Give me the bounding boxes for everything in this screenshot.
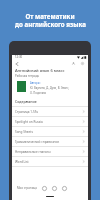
button[interactable]: Action: [61, 185, 68, 192]
staticText: Spotlight on Russia: [15, 120, 43, 124]
staticText: Word List: [15, 160, 29, 164]
button[interactable]: More options: [78, 59, 87, 68]
staticText: О. Подоляко: [30, 91, 47, 95]
staticText: Грамматический справочник: [15, 140, 60, 144]
staticText: Рабочая тетрадь: [15, 74, 40, 78]
button[interactable]: Bookmark: [69, 59, 78, 68]
button[interactable]: Back: [12, 59, 21, 68]
staticText: От математики: [25, 12, 75, 20]
staticText: Содержание: [15, 99, 37, 104]
button[interactable]: Грамматический справочник: [12, 137, 88, 146]
staticText: 12:30: [15, 55, 23, 59]
button[interactable]: Страница 1-55s: [12, 107, 88, 116]
staticText: Страница 1-55s: [15, 110, 39, 114]
button[interactable]: Action: [51, 185, 58, 192]
button[interactable]: Spotlight on Russia: [12, 117, 88, 126]
staticText: до английского языка: [15, 20, 86, 28]
staticText: Неправильные глаголы: [15, 150, 51, 154]
staticText: Song Sheets: [15, 130, 33, 134]
button[interactable]: Word List: [12, 157, 88, 166]
button[interactable]: Song Sheets: [12, 127, 88, 136]
staticText: Моя страница: [17, 186, 37, 190]
button[interactable]: Неправильные глаголы: [12, 147, 88, 156]
staticText: Ю. Ваулина, Д. Дули, В. Эванс,: [30, 86, 70, 90]
button[interactable]: Моя страница: [17, 186, 37, 190]
staticText: Авторы:: [30, 81, 41, 85]
staticText: Английский язык 6 класс: [15, 68, 65, 73]
button[interactable]: Action: [41, 185, 48, 192]
